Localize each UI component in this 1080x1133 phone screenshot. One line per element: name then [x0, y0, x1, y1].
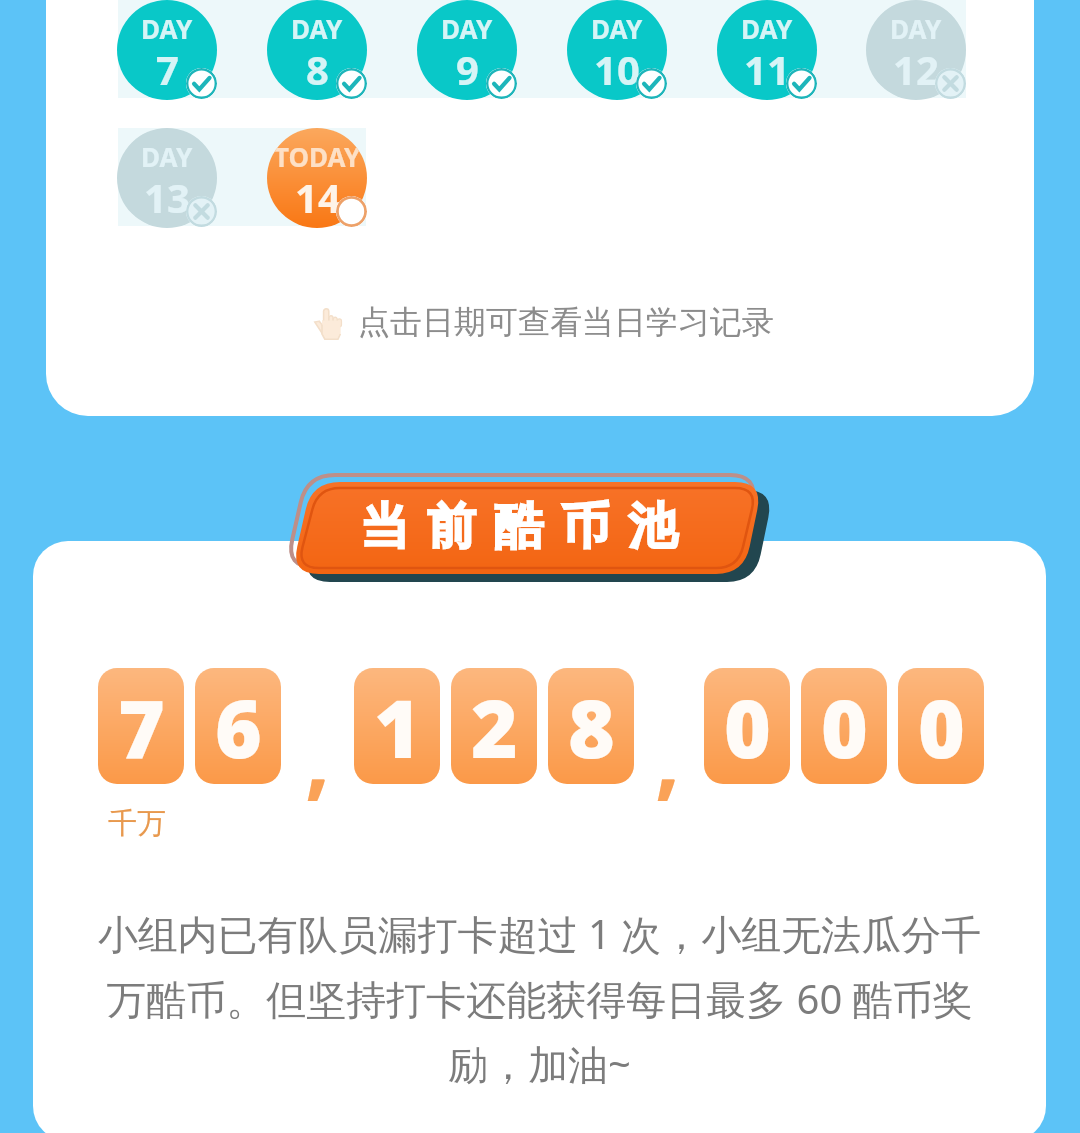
staticText: , [305, 696, 331, 816]
staticText: 1 [374, 672, 421, 781]
staticText: 当前酷币池 [351, 496, 686, 558]
staticText: 12 [893, 42, 939, 96]
staticText: 千万 [108, 805, 166, 842]
button[interactable]: Day 12 [866, 0, 997, 129]
staticText: 14 [295, 170, 341, 224]
button[interactable]: Day 9 [417, 0, 548, 129]
staticText: DAY [441, 11, 493, 46]
staticText: 9 [456, 42, 479, 96]
button[interactable]: Day 7 [117, 0, 248, 129]
staticText: 10 [594, 42, 640, 96]
button[interactable]: Day 8 [267, 0, 398, 129]
staticText: TODAY [274, 139, 361, 174]
staticText: DAY [141, 11, 193, 46]
button[interactable]: Day 10 [567, 0, 698, 129]
staticText: 小组内已有队员漏打卡超过 1 次，小组无法瓜分千万酷币。但坚持打卡还能获得每日最… [82, 906, 997, 1091]
staticText: 0 [821, 672, 868, 781]
staticText: DAY [890, 11, 942, 46]
staticText: 2 [471, 672, 518, 781]
staticText: 7 [118, 672, 165, 781]
staticText: 6 [215, 672, 262, 781]
staticText: 8 [568, 672, 615, 781]
staticText: 点击日期可查看当日学习记录 [358, 302, 774, 342]
button[interactable]: Day 11 [717, 0, 848, 129]
button[interactable]: Today, day 14 [267, 128, 398, 257]
staticText: 13 [144, 170, 190, 224]
staticText: 0 [724, 672, 771, 781]
staticText: DAY [291, 11, 343, 46]
staticText: DAY [591, 11, 643, 46]
staticText: 11 [744, 42, 790, 96]
staticText: 8 [306, 42, 329, 96]
staticText: , [655, 696, 681, 816]
staticText: DAY [141, 139, 193, 174]
staticText: 0 [918, 672, 965, 781]
button[interactable]: Day 13 [117, 128, 248, 257]
staticText: 7 [156, 42, 179, 96]
staticText: DAY [741, 11, 793, 46]
